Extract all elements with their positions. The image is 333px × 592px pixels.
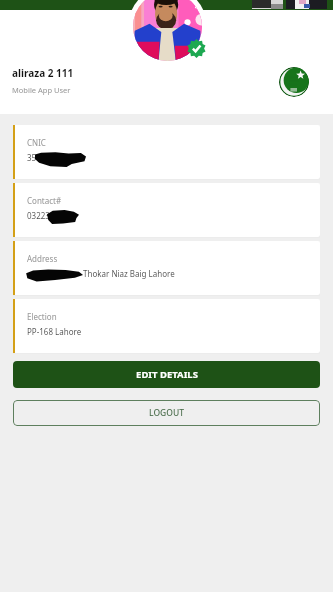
staticText: Contact# bbox=[27, 195, 62, 206]
staticText: EDIT DETAILS bbox=[136, 368, 198, 381]
staticText: aliraza 2 111 bbox=[12, 66, 74, 80]
button[interactable]: Address bbox=[13, 241, 320, 296]
button[interactable]: CNIC bbox=[13, 125, 320, 180]
staticText: 03223 bbox=[27, 210, 50, 221]
button[interactable]: Election bbox=[13, 299, 320, 354]
button[interactable]: Contact# bbox=[13, 183, 320, 238]
staticText: 35 bbox=[27, 152, 37, 163]
staticText: LOGOUT bbox=[149, 407, 184, 419]
button[interactable]: LOGOUT bbox=[13, 400, 320, 426]
staticText: Mobile App User bbox=[12, 85, 71, 95]
button[interactable]: EDIT DETAILS bbox=[13, 361, 320, 388]
staticText: Election bbox=[27, 311, 57, 322]
staticText: CNIC bbox=[27, 137, 46, 148]
staticText: Thokar Niaz Baig Lahore bbox=[83, 268, 175, 279]
button[interactable]: Country flag bbox=[279, 67, 309, 97]
staticText: Address bbox=[27, 253, 58, 264]
staticText: PP-168 Lahore bbox=[27, 326, 82, 337]
